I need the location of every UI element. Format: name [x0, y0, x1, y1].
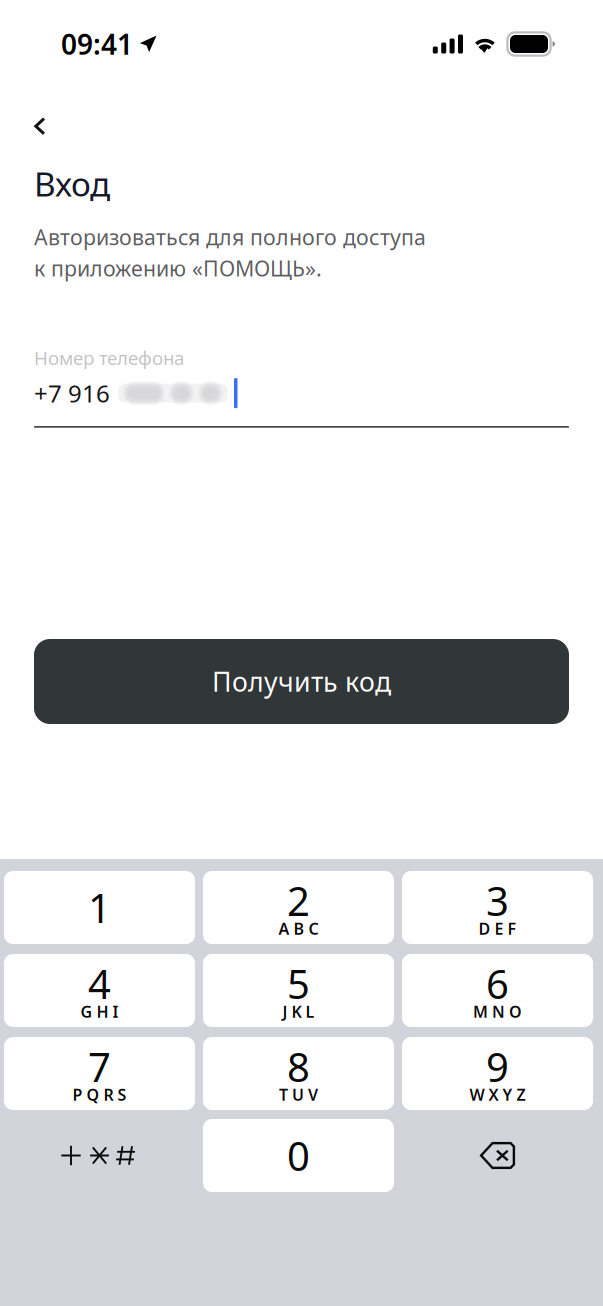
- staticText: W X Y Z: [469, 1084, 525, 1105]
- staticText: 7: [88, 1040, 111, 1093]
- staticText: T U V: [279, 1084, 318, 1105]
- staticText: Авторизоваться для полного доступа: [34, 223, 426, 251]
- staticText: D E F: [478, 918, 516, 939]
- button[interactable]: Delete: [402, 1119, 593, 1192]
- button[interactable]: 1: [4, 871, 195, 944]
- staticText: M N O: [473, 1001, 522, 1022]
- staticText: P Q R S: [72, 1084, 126, 1105]
- button[interactable]: Back: [34, 105, 68, 147]
- button[interactable]: 9: [402, 1037, 593, 1110]
- staticText: 4: [88, 957, 111, 1010]
- staticText: +7 916: [34, 377, 110, 409]
- staticText: 2: [287, 874, 310, 927]
- staticText: 5: [287, 957, 310, 1010]
- staticText: 0: [287, 1129, 310, 1182]
- staticText: Номер телефона: [34, 345, 184, 370]
- button[interactable]: 3: [402, 871, 593, 944]
- staticText: 9: [486, 1040, 509, 1093]
- staticText: Вход: [34, 161, 110, 206]
- staticText: 1: [88, 881, 111, 934]
- button[interactable]: Symbols: [4, 1119, 195, 1192]
- button[interactable]: 2: [203, 871, 394, 944]
- staticText: 09:41: [61, 25, 133, 63]
- button[interactable]: Получить код: [34, 639, 569, 724]
- staticText: 6: [486, 957, 509, 1010]
- button[interactable]: 8: [203, 1037, 394, 1110]
- staticText: J K L: [282, 1001, 314, 1022]
- button[interactable]: 5: [203, 954, 394, 1027]
- staticText: 8: [287, 1040, 310, 1093]
- staticText: A B C: [278, 918, 318, 939]
- staticText: 3: [486, 874, 509, 927]
- button[interactable]: 0: [203, 1119, 394, 1192]
- button[interactable]: 7: [4, 1037, 195, 1110]
- staticText: к приложению «ПОМОЩЬ».: [34, 254, 322, 282]
- button[interactable]: 4: [4, 954, 195, 1027]
- staticText: Получить код: [212, 664, 391, 699]
- button[interactable]: 6: [402, 954, 593, 1027]
- staticText: G H I: [80, 1001, 118, 1022]
